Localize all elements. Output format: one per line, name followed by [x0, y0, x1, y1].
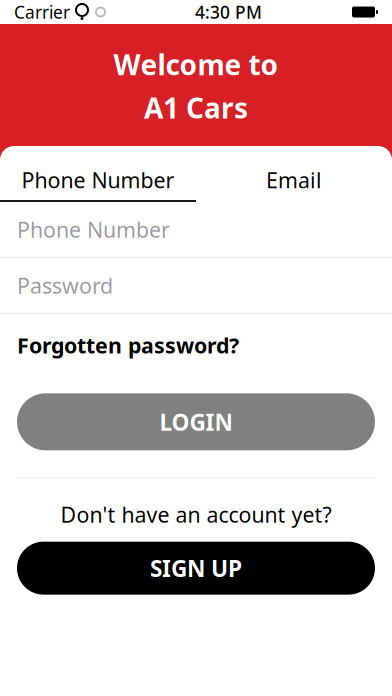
button[interactable]: LOGIN: [0, 393, 392, 450]
staticText: Password: [17, 271, 113, 300]
staticText: SIGN UP: [150, 553, 242, 583]
staticText: 4:30 PM: [195, 0, 262, 23]
button[interactable]: Email: [196, 160, 392, 200]
staticText: Phone Number: [17, 215, 170, 244]
button[interactable]: Phone Number: [0, 160, 196, 200]
staticText: Email: [266, 166, 322, 194]
staticText: Welcome to: [113, 46, 278, 83]
staticText: Carrier: [14, 0, 70, 23]
button[interactable]: SIGN UP: [0, 542, 392, 595]
button[interactable]: Forgotten password?: [0, 323, 256, 367]
staticText: A1 Cars: [144, 89, 248, 126]
staticText: Phone Number: [21, 166, 174, 194]
staticText: Don't have an account yet?: [60, 500, 331, 529]
staticText: LOGIN: [159, 407, 232, 437]
staticText: Forgotten password?: [17, 331, 239, 359]
staticText: [70, 0, 75, 23]
